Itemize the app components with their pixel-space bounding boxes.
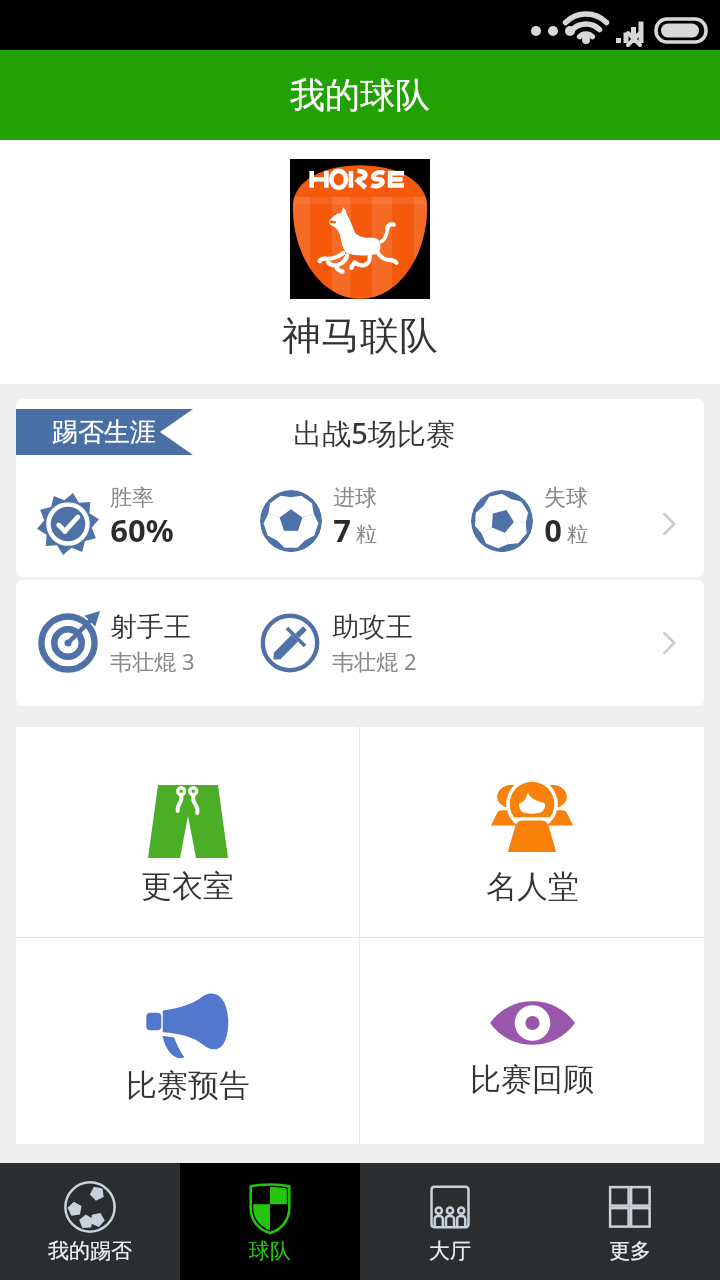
staticText: 更衣室 bbox=[141, 867, 234, 906]
staticText: 球队 bbox=[249, 1238, 291, 1264]
staticText: 0 bbox=[544, 509, 562, 551]
staticText: 名人堂 bbox=[486, 867, 579, 906]
staticText: 胜率 bbox=[110, 484, 154, 512]
staticText: 神马联队 bbox=[282, 311, 438, 360]
staticText: 韦壮焜 2 bbox=[332, 646, 417, 676]
staticText: 比赛预告 bbox=[126, 1066, 250, 1105]
staticText: 比赛回顾 bbox=[470, 1060, 594, 1099]
button[interactable]: 我的踢否 bbox=[0, 1163, 180, 1280]
staticText: 我的球队 bbox=[290, 73, 430, 117]
button[interactable]: 大厅 bbox=[360, 1163, 540, 1280]
staticText: 踢否生涯 bbox=[52, 416, 156, 449]
button[interactable]: 更衣室 bbox=[16, 727, 359, 937]
staticText: 失球 bbox=[544, 484, 588, 512]
button[interactable]: Team logo bbox=[290, 159, 430, 299]
staticText: 韦壮焜 3 bbox=[110, 646, 195, 676]
button[interactable]: 比赛预告 bbox=[16, 938, 359, 1144]
staticText: 60% bbox=[110, 509, 174, 551]
button[interactable]: 更多 bbox=[540, 1163, 720, 1280]
button[interactable]: 比赛回顾 bbox=[360, 938, 704, 1144]
staticText: 出战5场比赛 bbox=[293, 413, 455, 453]
button[interactable]: 球队 bbox=[180, 1163, 360, 1280]
staticText: 进球 bbox=[333, 484, 377, 512]
staticText: 助攻王 bbox=[332, 610, 413, 644]
button[interactable]: 射手王 bbox=[16, 580, 704, 706]
staticText: 射手王 bbox=[110, 610, 191, 644]
staticText: 7 bbox=[333, 509, 351, 551]
staticText: 粒 bbox=[356, 521, 377, 547]
staticText: 更多 bbox=[609, 1238, 651, 1264]
button[interactable]: 名人堂 bbox=[360, 727, 704, 937]
button[interactable]: 胜率 bbox=[16, 470, 704, 577]
staticText: 粒 bbox=[567, 521, 588, 547]
staticText: 我的踢否 bbox=[48, 1238, 132, 1264]
staticText: 大厅 bbox=[429, 1238, 471, 1264]
